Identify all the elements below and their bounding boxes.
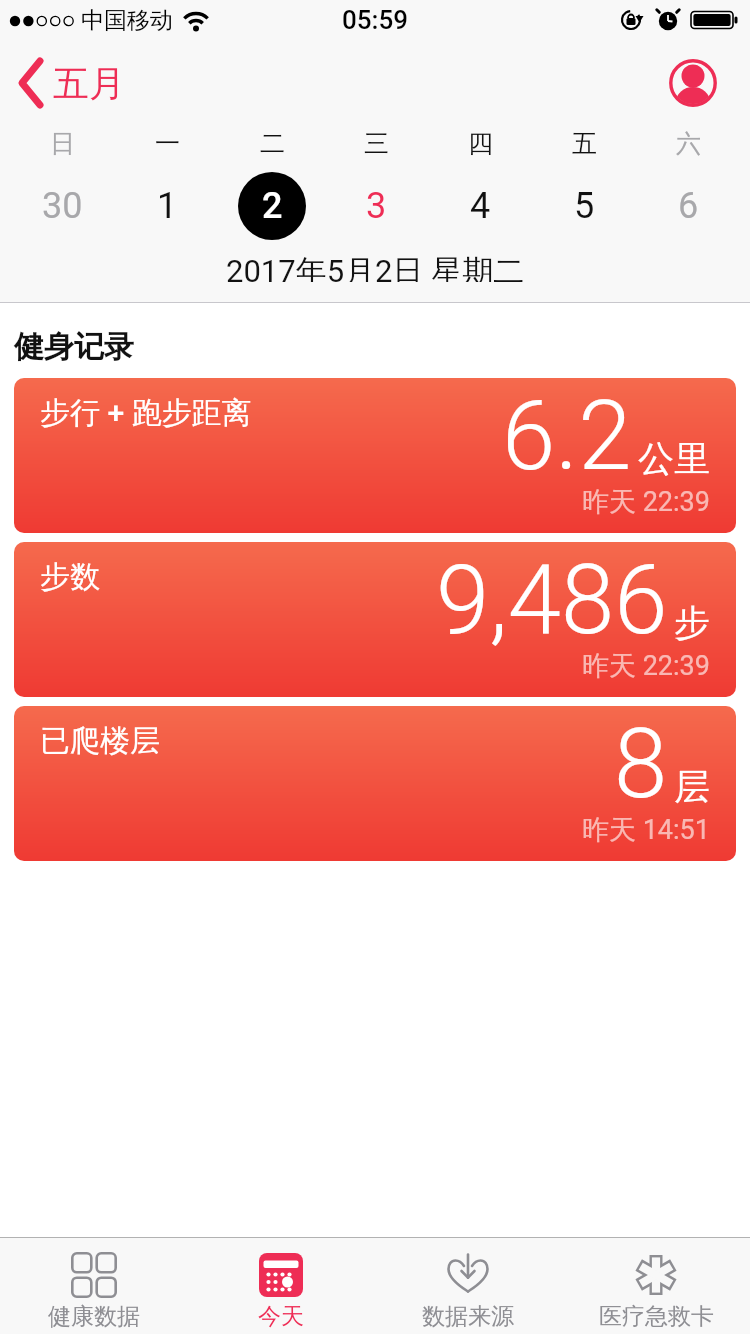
staticText: 六 bbox=[676, 128, 701, 159]
button[interactable]: 步行 + 跑步距离 bbox=[14, 378, 736, 533]
staticText: 4 bbox=[470, 185, 491, 227]
staticText: 数据来源 bbox=[422, 1302, 514, 1331]
staticText: 步数 bbox=[40, 558, 100, 596]
button[interactable]: 已爬楼层 bbox=[14, 706, 736, 861]
staticText: 今天 bbox=[258, 1302, 304, 1331]
staticText: 中国移动 bbox=[81, 6, 173, 35]
staticText: 一 bbox=[155, 128, 180, 159]
staticText: 步 bbox=[674, 600, 710, 645]
staticText: 日 bbox=[50, 128, 75, 159]
staticText: 6.2 bbox=[502, 380, 632, 493]
staticText: 30 bbox=[42, 185, 83, 227]
staticText: 8 bbox=[614, 708, 668, 821]
button[interactable]: 步数 bbox=[14, 542, 736, 697]
button[interactable]: 数据来源 bbox=[374, 1238, 562, 1334]
staticText: 健身记录 bbox=[14, 328, 134, 366]
staticText: 2017年5月2日 星期二 bbox=[226, 252, 525, 282]
staticText: 五月 bbox=[53, 61, 125, 106]
button[interactable] bbox=[669, 59, 717, 107]
staticText: 层 bbox=[674, 764, 710, 809]
staticText: 9,486 bbox=[436, 544, 668, 657]
staticText: 昨天 22:39 bbox=[582, 485, 710, 519]
button[interactable]: 2 bbox=[220, 160, 324, 252]
staticText: 2 bbox=[262, 185, 283, 227]
staticText: 步行 + 跑步距离 bbox=[40, 394, 252, 432]
button[interactable]: 健康数据 bbox=[0, 1238, 187, 1334]
staticText: 二 bbox=[260, 128, 285, 159]
button[interactable]: 医疗急救卡 bbox=[562, 1238, 750, 1334]
staticText: 6 bbox=[678, 185, 699, 227]
button[interactable]: 5 bbox=[532, 160, 636, 252]
button[interactable]: 五月 bbox=[18, 59, 125, 107]
button[interactable]: 4 bbox=[428, 160, 532, 252]
staticText: 5 bbox=[574, 185, 595, 227]
staticText: 四 bbox=[468, 128, 493, 159]
button[interactable]: 30 bbox=[10, 160, 115, 252]
staticText: 05:59 bbox=[342, 5, 409, 35]
staticText: 昨天 22:39 bbox=[582, 649, 710, 683]
staticText: 健康数据 bbox=[48, 1302, 140, 1331]
staticText: 昨天 14:51 bbox=[582, 813, 710, 847]
button[interactable]: 今天 bbox=[187, 1238, 374, 1334]
staticText: 医疗急救卡 bbox=[599, 1302, 714, 1331]
staticText: 五 bbox=[572, 128, 597, 159]
staticText: 已爬楼层 bbox=[40, 722, 160, 760]
button[interactable]: 1 bbox=[115, 160, 220, 252]
staticText: 三 bbox=[364, 128, 389, 159]
staticText: 公里 bbox=[638, 436, 710, 481]
staticText: 3 bbox=[366, 185, 387, 227]
button[interactable]: 6 bbox=[636, 160, 740, 252]
button[interactable]: 3 bbox=[324, 160, 428, 252]
staticText: 1 bbox=[157, 185, 178, 227]
